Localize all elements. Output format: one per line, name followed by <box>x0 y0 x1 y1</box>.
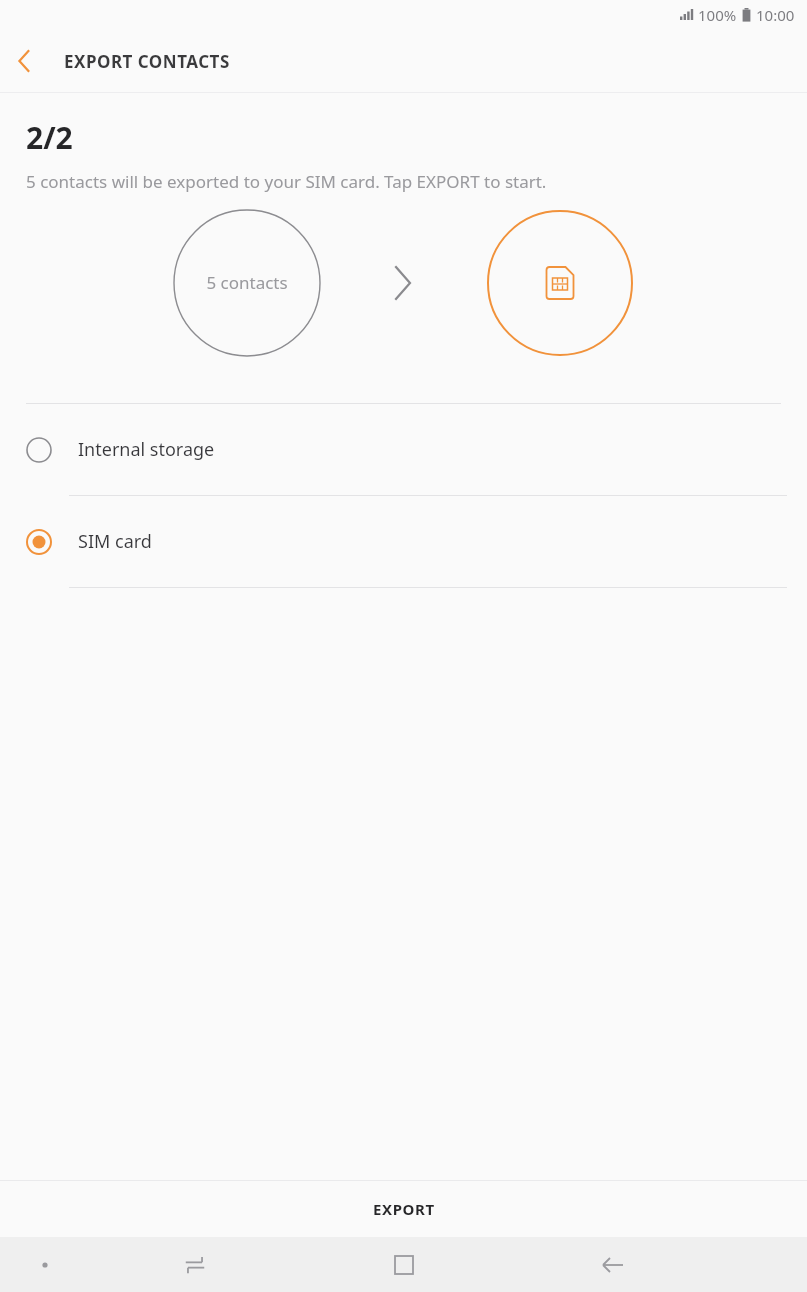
staticText: 10:00 <box>756 5 795 25</box>
button[interactable]: Home <box>299 1237 508 1292</box>
staticText: 100% <box>698 5 737 25</box>
button[interactable]: Recent apps <box>90 1237 299 1292</box>
button[interactable]: EXPORT <box>0 1181 807 1237</box>
staticText: EXPORT <box>373 1199 435 1219</box>
button[interactable]: SIM card <box>0 496 807 588</box>
staticText: 5 contacts will be exported to your SIM … <box>26 170 547 193</box>
button[interactable]: Navigate up <box>0 35 52 87</box>
button[interactable]: Back <box>508 1237 717 1292</box>
staticText: 2/2 <box>26 117 73 158</box>
staticText: EXPORT CONTACTS <box>64 50 230 73</box>
staticText: Internal storage <box>78 437 215 462</box>
staticText: 5 contacts <box>199 271 295 294</box>
button[interactable]: Internal storage <box>0 404 807 496</box>
staticText: SIM card <box>78 529 152 554</box>
